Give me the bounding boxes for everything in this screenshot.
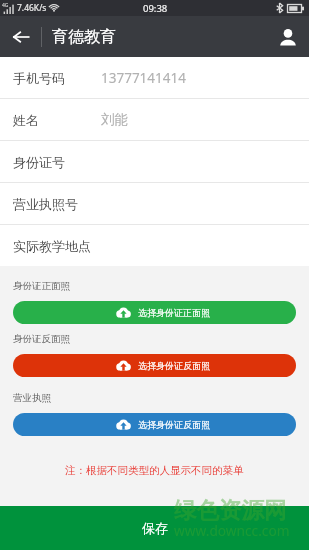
button[interactable]: 选择身份证正面照	[13, 301, 296, 324]
staticText: 育德教育	[52, 27, 116, 47]
button[interactable]: 保存	[0, 506, 309, 550]
staticText: 选择身份证正面照	[138, 307, 210, 318]
staticText: 09:38	[143, 2, 168, 15]
button[interactable]: 身份证号	[0, 141, 309, 183]
button[interactable]: 选择身份证反面照	[13, 354, 296, 377]
button[interactable]: 选择身份证反面照	[13, 413, 296, 436]
staticText: 营业执照	[13, 392, 51, 404]
staticText: 4G	[2, 2, 9, 9]
button[interactable]: Back	[0, 16, 41, 57]
staticText: 身份证正面照	[13, 280, 70, 292]
staticText: 姓名	[13, 112, 39, 128]
button[interactable]: Account	[267, 16, 309, 57]
button[interactable]: 手机号码	[0, 57, 309, 99]
staticText: 保存	[142, 520, 168, 536]
staticText: 选择身份证反面照	[138, 419, 210, 430]
staticText: 实际教学地点	[13, 238, 91, 254]
staticText: www.downcc.com	[174, 521, 290, 540]
button[interactable]: 姓名	[0, 99, 309, 141]
staticText: 营业执照号	[13, 196, 78, 212]
staticText: 注：根据不同类型的人显示不同的菜单	[65, 464, 244, 477]
button[interactable]: 实际教学地点	[0, 225, 309, 266]
staticText: 刘能	[101, 111, 128, 128]
staticText: 手机号码	[13, 70, 65, 86]
staticText: 选择身份证反面照	[138, 360, 210, 371]
staticText: 身份证号	[13, 154, 65, 170]
button[interactable]: 营业执照号	[0, 183, 309, 225]
staticText: 身份证反面照	[13, 333, 70, 345]
staticText: 7.46K/s	[17, 2, 47, 14]
staticText: 13777141414	[101, 69, 186, 87]
staticText: 绿色资源网	[174, 496, 287, 524]
